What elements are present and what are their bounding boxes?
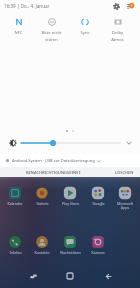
button[interactable]: Sync [68, 16, 101, 36]
button[interactable]: Play Store [57, 186, 83, 206]
button[interactable]: Galerie [29, 186, 55, 206]
button[interactable]: Helligkeit umschalten [8, 138, 18, 148]
staticText: Play Store [62, 201, 79, 206]
staticText: 16:39 | Do., 4. Januar [4, 3, 50, 9]
staticText: Android-System · USB zur Dateiübertragun… [12, 158, 95, 163]
button[interactable]: Microsoft Apps [112, 186, 138, 210]
staticText: NFC [14, 30, 23, 36]
button[interactable]: Letzte Apps [23, 266, 43, 286]
button[interactable]: Google [85, 186, 111, 206]
button[interactable]: Helligkeit [19, 139, 123, 147]
button[interactable]: Mehr anzeigen [124, 138, 134, 148]
button[interactable]: Nachrichten [57, 235, 83, 255]
staticText: Kontakte [34, 250, 50, 255]
button[interactable]: NFC [2, 16, 35, 36]
staticText: Microsoft Apps [117, 201, 133, 210]
button[interactable]: Zurück [98, 266, 118, 286]
staticText: Kalender [7, 201, 23, 206]
button[interactable]: Telefon [2, 235, 28, 255]
button[interactable]: Dolby Atmos [101, 16, 134, 42]
button[interactable]: Kontakte [29, 235, 55, 255]
button[interactable]: Kalender [2, 186, 28, 206]
button[interactable]: Startbildschirm [60, 266, 80, 286]
staticText: BENACHRICHTIGUNGSEINST. [26, 170, 82, 175]
button[interactable]: Bitte nicht stören [35, 16, 68, 42]
button[interactable]: LÖSCHEN [108, 167, 140, 177]
button[interactable]: Android-System · USB zur Dateiübertragun… [0, 154, 140, 167]
button[interactable]: BENACHRICHTIGUNGSEINST. [0, 167, 108, 177]
staticText: Galerie [36, 201, 49, 206]
staticText: Google [92, 201, 105, 206]
staticText: Bitte nicht stören [41, 30, 62, 42]
staticText: Dolby Atmos [111, 30, 124, 42]
staticText: Telefon [9, 250, 22, 255]
button[interactable]: Nutzer [125, 0, 137, 12]
staticText: LÖSCHEN [115, 170, 134, 175]
staticText: Nachrichten [60, 250, 81, 255]
staticText: Kamera [91, 250, 105, 255]
button[interactable]: Kamera [85, 235, 111, 255]
staticText: Sync [80, 30, 90, 36]
button[interactable]: Einstellungen [110, 0, 122, 12]
